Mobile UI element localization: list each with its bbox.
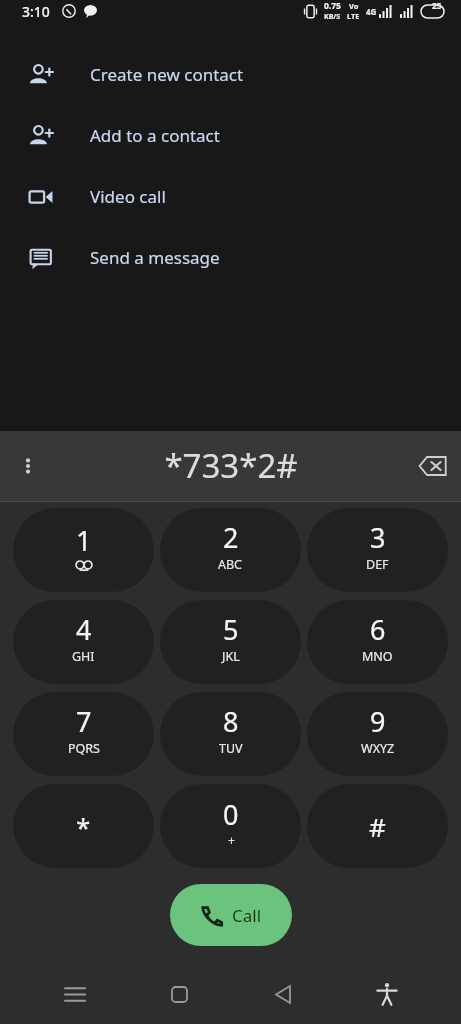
button[interactable]: Create new contact: [0, 44, 461, 105]
staticText: *733*2#: [164, 443, 298, 488]
button[interactable]: 2: [160, 508, 301, 592]
staticText: 5: [223, 611, 239, 648]
staticText: Video call: [90, 185, 166, 208]
button[interactable]: Home: [155, 970, 203, 1018]
staticText: 0: [223, 796, 239, 833]
staticText: WXYZ: [361, 740, 395, 757]
staticText: 25: [432, 0, 442, 12]
staticText: Add to a contact: [90, 124, 220, 147]
button[interactable]: 7: [13, 692, 154, 776]
staticText: LTE: [347, 11, 360, 21]
button[interactable]: 3: [307, 508, 448, 592]
staticText: 3: [370, 519, 386, 556]
staticText: Send a message: [90, 246, 220, 269]
button[interactable]: 5: [160, 600, 301, 684]
staticText: *: [76, 809, 91, 844]
button[interactable]: 0: [160, 784, 301, 868]
staticText: Create new contact: [90, 63, 244, 86]
staticText: 3:10: [22, 2, 50, 21]
staticText: 1: [76, 522, 92, 559]
button[interactable]: Send a message: [0, 227, 461, 288]
button[interactable]: Video call: [0, 166, 461, 227]
staticText: 4G: [366, 6, 377, 17]
staticText: ABC: [218, 556, 243, 573]
staticText: #: [369, 809, 386, 844]
button[interactable]: 6: [307, 600, 448, 684]
staticText: KB/S: [324, 12, 341, 22]
staticText: 0.75: [324, 0, 341, 12]
staticText: 9: [370, 703, 386, 740]
staticText: JKL: [222, 648, 240, 665]
button[interactable]: Recent apps: [51, 970, 99, 1018]
staticText: DEF: [366, 556, 389, 573]
staticText: 8: [223, 703, 239, 740]
staticText: 2: [223, 519, 239, 556]
staticText: +: [228, 832, 235, 848]
button[interactable]: 4: [13, 600, 154, 684]
button[interactable]: Back: [259, 970, 307, 1018]
staticText: MNO: [362, 648, 393, 665]
button[interactable]: #: [307, 784, 448, 868]
staticText: 7: [76, 703, 92, 740]
button[interactable]: 1: [13, 508, 154, 592]
button[interactable]: Accessibility: [363, 970, 411, 1018]
staticText: PQRS: [68, 740, 100, 757]
button[interactable]: 8: [160, 692, 301, 776]
button[interactable]: Call: [170, 884, 292, 946]
button[interactable]: Backspace: [403, 437, 461, 495]
staticText: 4: [76, 611, 92, 648]
button[interactable]: More options: [0, 438, 56, 494]
staticText: 6: [370, 611, 386, 648]
button[interactable]: 9: [307, 692, 448, 776]
staticText: Vo: [349, 1, 359, 11]
staticText: GHI: [72, 648, 95, 665]
button[interactable]: Add to a contact: [0, 105, 461, 166]
staticText: TUV: [219, 740, 243, 757]
button[interactable]: *: [13, 784, 154, 868]
staticText: Call: [232, 904, 262, 927]
